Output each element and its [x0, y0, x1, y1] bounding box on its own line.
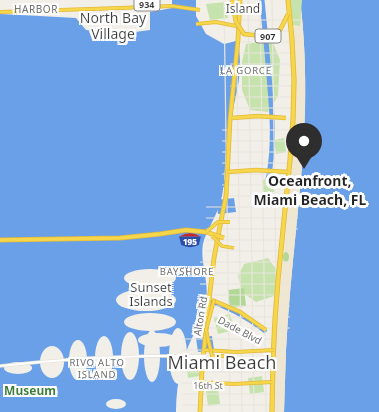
- button[interactable]: Map of Miami Beach, Florida: [0, 0, 379, 412]
- button[interactable]: Oceanfront, Miami Beach, FL marker: [0, 0, 379, 412]
